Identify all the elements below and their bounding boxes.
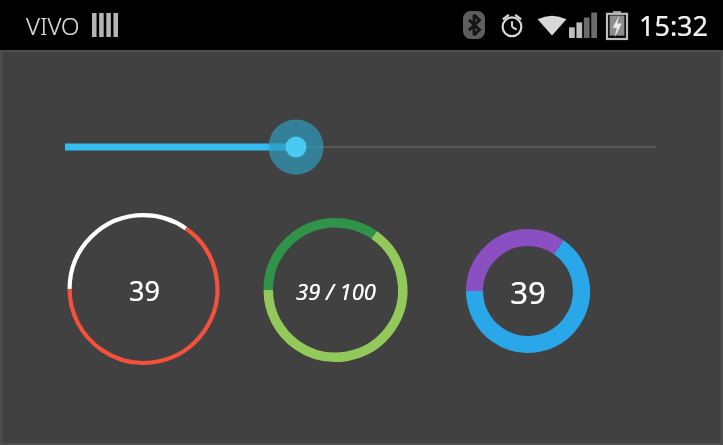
staticText: 39: [510, 271, 546, 313]
staticText: 39 / 100: [296, 276, 376, 306]
button[interactable]: 39: [59, 267, 229, 313]
staticText: VIVO: [26, 9, 80, 42]
button[interactable]: 39: [443, 269, 613, 315]
staticText: 15:32: [639, 7, 709, 44]
button[interactable]: 39 / 100: [251, 268, 421, 314]
staticText: 39: [129, 272, 160, 309]
button[interactable]: Slider: [0, 117, 723, 177]
